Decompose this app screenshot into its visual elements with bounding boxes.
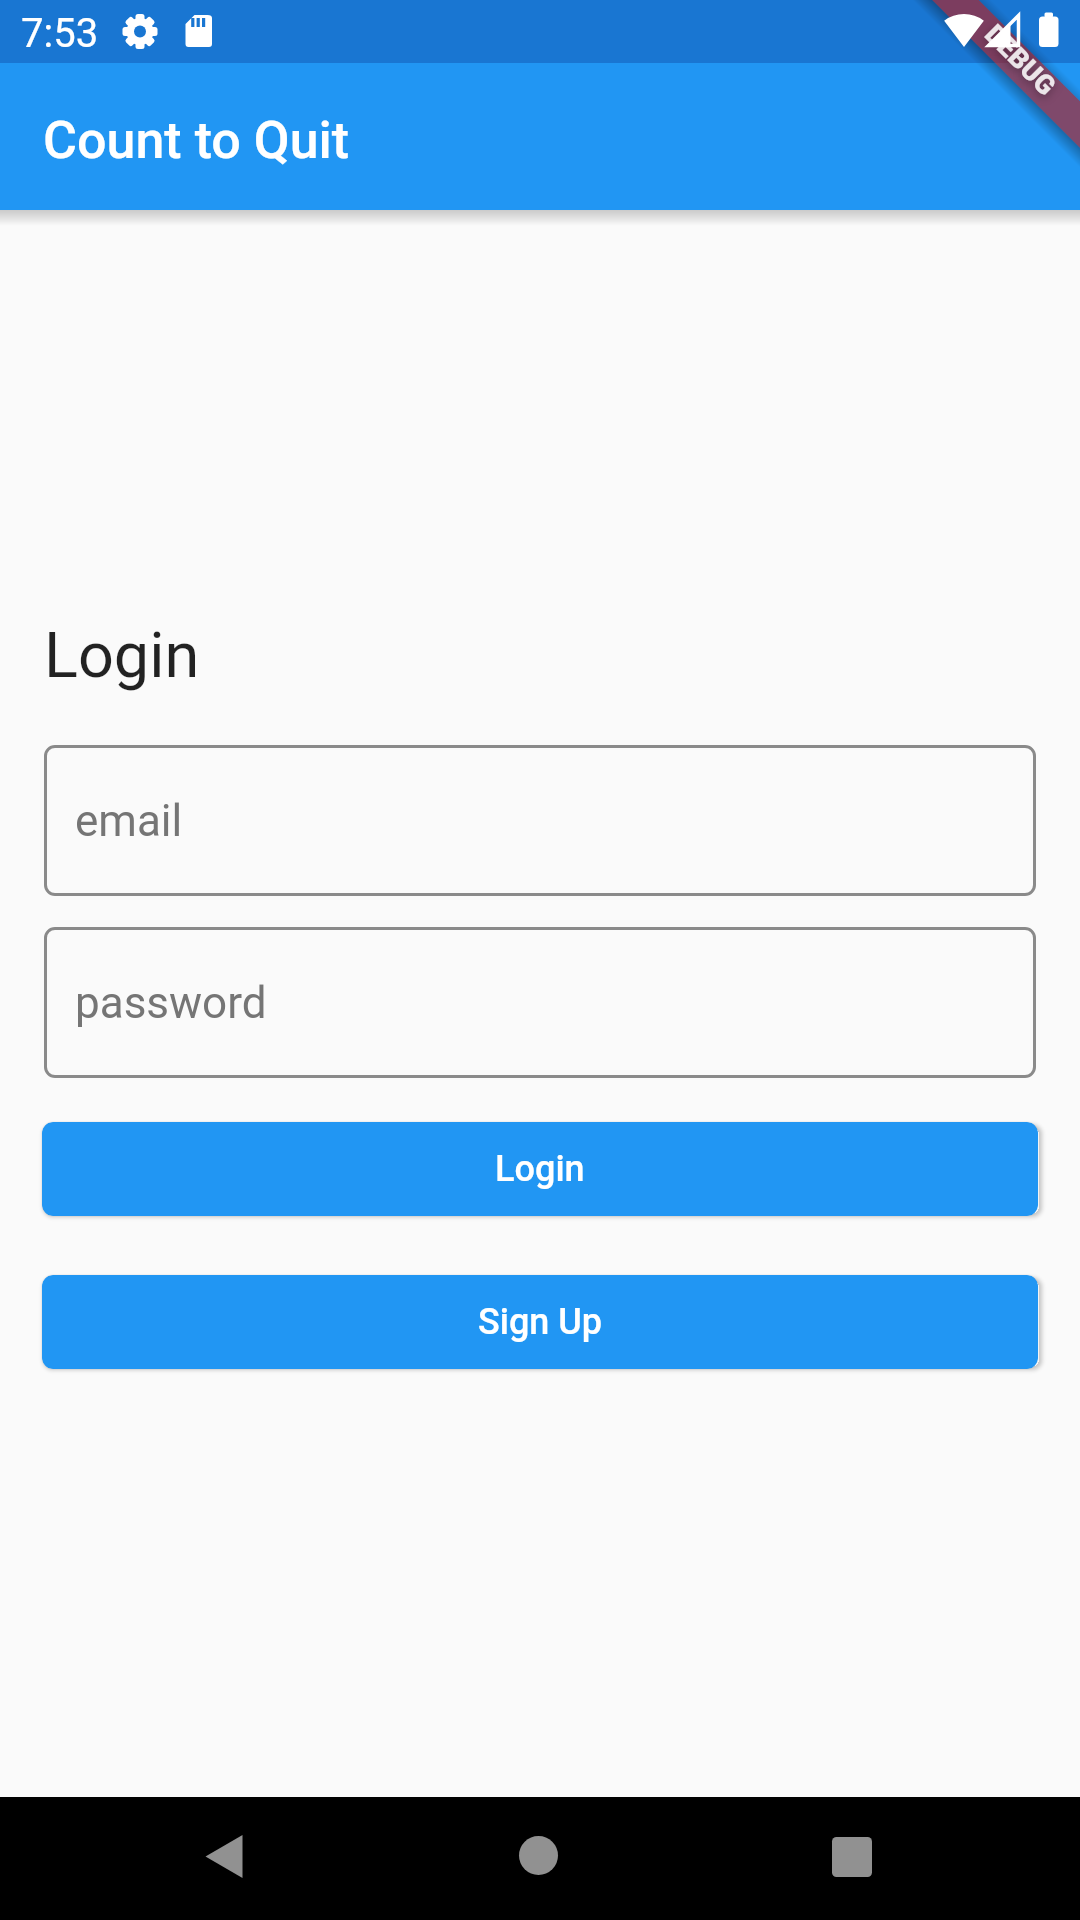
staticText: Login (495, 1148, 585, 1190)
button[interactable] (164, 1797, 284, 1920)
button[interactable]: Login (42, 1122, 1038, 1216)
button[interactable]: Sign Up (42, 1275, 1038, 1369)
staticText: email (75, 795, 183, 847)
staticText: Count to Quit (43, 110, 350, 171)
button[interactable]: password (44, 927, 1036, 1078)
button[interactable]: email (44, 745, 1036, 896)
staticText: Login (44, 619, 200, 693)
staticText: Sign Up (478, 1301, 603, 1343)
staticText: 7:53 (21, 10, 99, 57)
staticText: password (75, 977, 267, 1029)
button[interactable] (792, 1797, 912, 1920)
staticText: DEBUG (978, 18, 1062, 102)
button[interactable] (478, 1797, 598, 1920)
